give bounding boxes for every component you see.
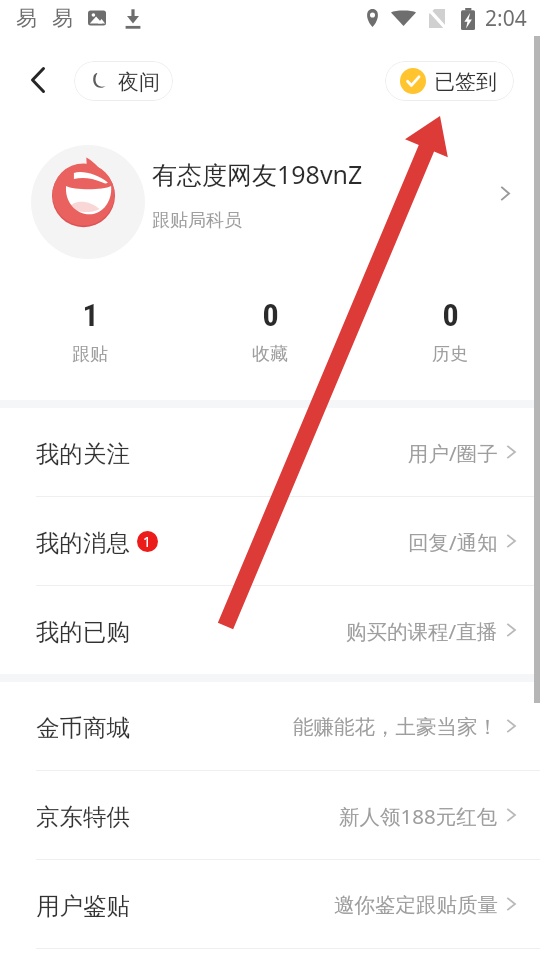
staticText: 跟贴 <box>72 343 108 366</box>
staticText: 我的已购 <box>36 617 130 647</box>
staticText: 我的消息 <box>36 528 130 558</box>
staticText: 收藏 <box>252 343 288 366</box>
staticText: 夜间 <box>118 69 160 95</box>
staticText: 邀你鉴定跟贴质量 <box>334 892 498 918</box>
staticText: 用户鉴贴 <box>36 891 130 921</box>
staticText: 易 <box>16 5 37 31</box>
button[interactable]: 我的已购 <box>0 586 540 674</box>
button[interactable]: 我的关注 <box>0 408 540 496</box>
staticText: 金币商城 <box>36 713 130 743</box>
button[interactable]: 已签到 <box>385 61 514 101</box>
staticText: 0 <box>442 296 459 334</box>
button[interactable]: 有态度网友198vnZ <box>0 124 540 280</box>
staticText: 1 <box>143 532 152 551</box>
button[interactable]: 夜间 <box>74 61 173 101</box>
staticText: 我的关注 <box>36 439 130 469</box>
button[interactable]: 我的消息 <box>0 497 540 585</box>
staticText: 用户/圈子 <box>408 439 498 467</box>
staticText: 历史 <box>432 343 468 366</box>
staticText: 新人领188元红包 <box>339 802 498 830</box>
button[interactable]: 金币商城 <box>0 682 540 770</box>
staticText: 1 <box>82 296 99 334</box>
button[interactable]: Back <box>14 56 62 104</box>
staticText: 0 <box>262 296 279 334</box>
staticText: 购买的课程/直播 <box>346 617 498 645</box>
staticText: 京东特供 <box>36 802 130 832</box>
staticText: 已签到 <box>434 69 497 95</box>
button[interactable]: 1 <box>0 280 180 400</box>
button[interactable]: 用户鉴贴 <box>0 860 540 948</box>
button[interactable]: 0 <box>360 280 540 400</box>
staticText: 回复/通知 <box>408 528 498 556</box>
staticText: 易 <box>52 5 73 31</box>
button[interactable]: 京东特供 <box>0 771 540 859</box>
staticText: 2:04 <box>485 4 527 33</box>
staticText: 能赚能花，土豪当家！ <box>293 714 498 740</box>
staticText: 有态度网友198vnZ <box>152 157 363 191</box>
button[interactable]: 0 <box>180 280 360 400</box>
staticText: 跟贴局科员 <box>152 209 242 232</box>
